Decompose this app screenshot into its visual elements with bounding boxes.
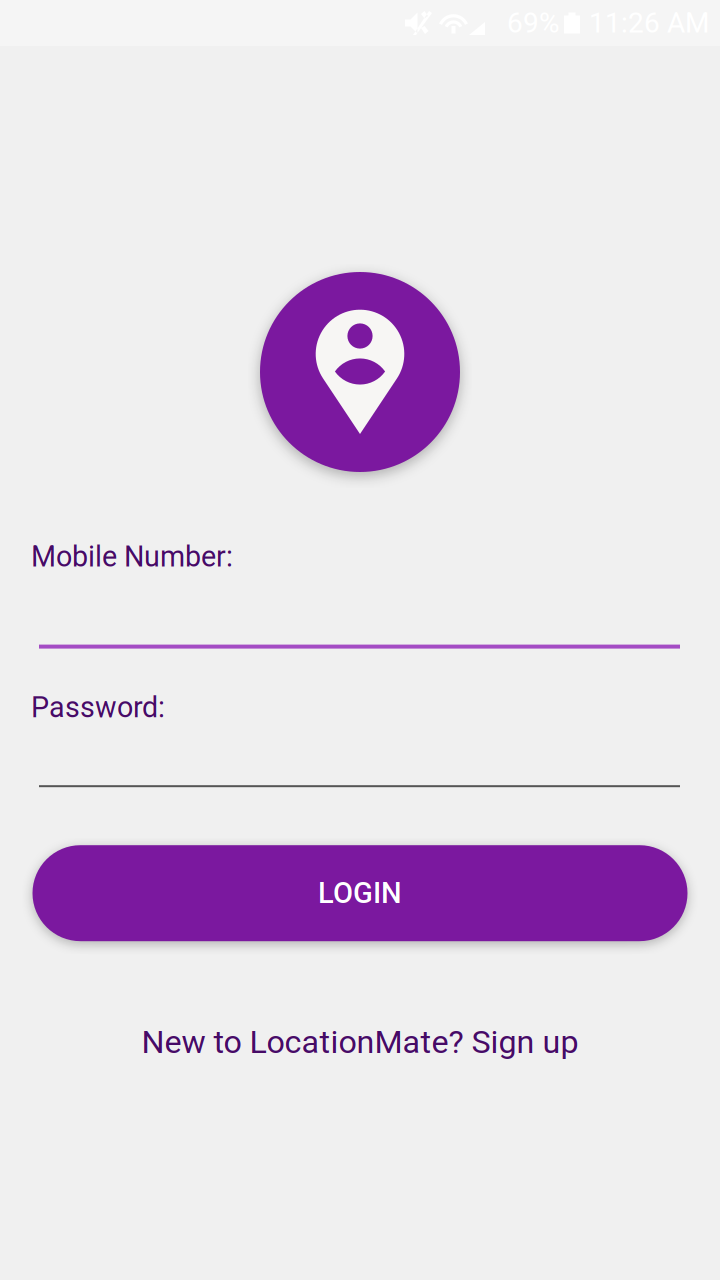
button[interactable]: Mobile Number [0,540,720,649]
staticText: 69% [507,7,560,39]
button[interactable]: LOGIN [32,845,687,941]
staticText: Mobile Number: [31,540,233,574]
staticText: Password: [31,691,165,724]
button[interactable]: New to LocationMate? Sign up [141,1023,578,1061]
button[interactable]: Password [0,691,720,787]
staticText: New to LocationMate? Sign up [141,1023,578,1061]
staticText: LOGIN [318,876,402,910]
staticText: 11:26 AM [589,7,709,39]
